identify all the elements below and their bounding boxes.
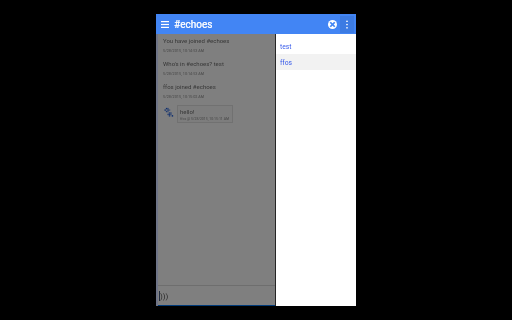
button[interactable]: More options (340, 16, 354, 33)
staticText: ffos @ 5/28/2015, 10:15:11 AM (180, 117, 230, 121)
staticText: 5/28/2015, 10:14:53 AM (163, 71, 205, 75)
button[interactable]: Open navigation menu (156, 14, 174, 34)
button[interactable]: ffos (275, 54, 356, 70)
staticText: 5/28/2015, 10:15:02 AM (163, 94, 205, 98)
staticText: hello! (180, 108, 195, 115)
button[interactable]: Who's in #echoes? test (163, 60, 271, 75)
staticText: 5/28/2015, 10:14:53 AM (163, 48, 205, 52)
staticText: Who's in #echoes? test (163, 60, 224, 67)
staticText: You have joined #echoes (163, 37, 230, 44)
staticText: ffos joined #echoes (163, 83, 216, 90)
button[interactable]: test (275, 38, 356, 54)
staticText: ))) (160, 292, 169, 301)
staticText: test (280, 43, 292, 51)
staticText: ffos (280, 59, 293, 67)
button[interactable]: You have joined #echoes (163, 37, 271, 52)
button[interactable]: ffos joined #echoes (163, 83, 271, 98)
staticText: #echoes (174, 19, 213, 31)
button[interactable]: Message input field (156, 285, 275, 306)
button[interactable]: Leave channel (324, 14, 340, 34)
